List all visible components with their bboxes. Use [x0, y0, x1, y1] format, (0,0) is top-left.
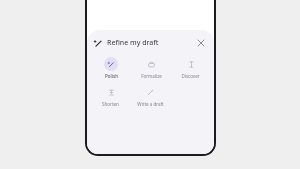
staticText: Formalize [141, 73, 162, 79]
staticText: Polish [105, 73, 118, 79]
staticText: Discover [181, 73, 200, 79]
button[interactable]: Shorten [91, 84, 130, 108]
button[interactable]: Close [194, 36, 208, 50]
staticText: Write a draft [137, 101, 164, 107]
button[interactable]: Formalize [131, 56, 171, 80]
button[interactable]: Write a draft [130, 84, 170, 108]
button[interactable]: Discover [171, 56, 210, 80]
button[interactable]: Polish [91, 56, 131, 80]
staticText: Shorten [102, 101, 119, 107]
staticText: Refine my draft [107, 38, 159, 48]
